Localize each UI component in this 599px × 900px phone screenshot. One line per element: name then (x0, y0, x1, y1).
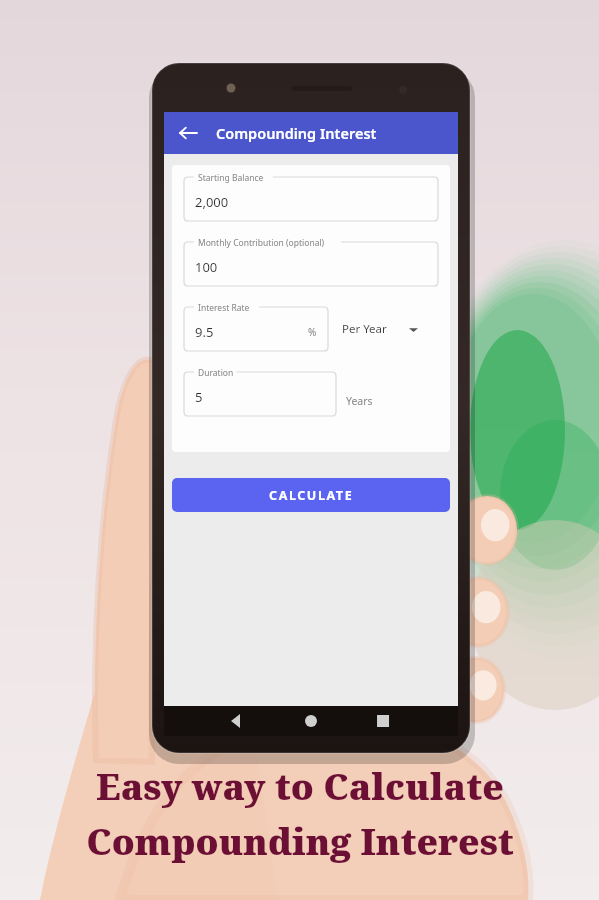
staticText: CALCULATE (269, 487, 354, 504)
staticText: Per Year (342, 321, 387, 337)
staticText: Years (346, 394, 373, 408)
staticText: Interest Rate (198, 302, 250, 314)
staticText: 9.5 (195, 323, 214, 341)
staticText: 2,000 (195, 193, 229, 211)
button[interactable]: Interest Rate (184, 307, 328, 351)
button[interactable]: Monthly Contribution (optional) (184, 242, 438, 286)
staticText: Duration (198, 367, 234, 379)
staticText: Monthly Contribution (optional) (198, 237, 325, 249)
button[interactable]: Back (172, 117, 204, 149)
button[interactable]: Starting Balance (184, 177, 438, 221)
button[interactable]: Duration (184, 372, 336, 416)
staticText: Starting Balance (198, 172, 264, 184)
staticText: Compounding Interest (216, 123, 377, 143)
button[interactable]: CALCULATE (172, 478, 450, 512)
staticText: % (308, 325, 317, 339)
staticText: Easy way to Calculate (96, 762, 504, 811)
staticText: 5 (195, 388, 203, 406)
staticText: 100 (195, 258, 218, 276)
button[interactable]: Per Year (342, 314, 438, 344)
staticText: Compounding Interest (86, 817, 514, 866)
